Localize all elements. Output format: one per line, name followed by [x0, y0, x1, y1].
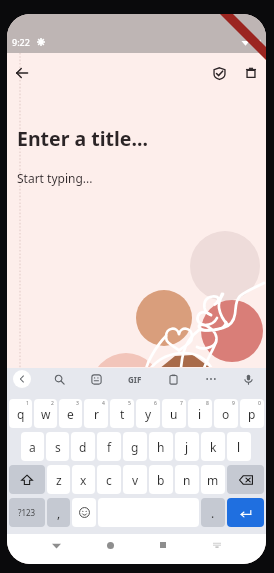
- button[interactable]: w: [34, 399, 57, 428]
- button[interactable]: GIF: [124, 368, 146, 390]
- button[interactable]: Stickers: [86, 369, 106, 389]
- button[interactable]: ?123: [9, 498, 45, 527]
- staticText: m: [207, 472, 219, 488]
- button[interactable]: [227, 498, 264, 527]
- staticText: 9:22: [12, 36, 30, 48]
- staticText: u: [170, 406, 178, 422]
- staticText: y: [145, 406, 152, 422]
- button[interactable]: Back: [45, 534, 67, 556]
- button[interactable]: [72, 498, 96, 527]
- button[interactable]: k: [201, 432, 225, 461]
- staticText: f: [107, 439, 112, 455]
- staticText: p: [248, 406, 256, 422]
- staticText: d: [79, 439, 87, 455]
- staticText: k: [210, 439, 217, 455]
- staticText: 8: [206, 400, 209, 407]
- button[interactable]: c: [97, 465, 121, 494]
- button[interactable]: Hide keyboard: [206, 534, 228, 556]
- button[interactable]: h: [149, 432, 173, 461]
- button[interactable]: y: [136, 399, 160, 428]
- button[interactable]: ,: [47, 498, 70, 527]
- button[interactable]: n: [175, 465, 199, 494]
- staticText: g: [131, 439, 139, 455]
- button[interactable]: Delete: [239, 61, 263, 85]
- staticText: 3: [76, 400, 79, 407]
- staticText: q: [17, 406, 25, 422]
- staticText: 4: [102, 400, 105, 407]
- button[interactable]: More options: [201, 369, 221, 389]
- staticText: ?123: [18, 507, 36, 518]
- button[interactable]: g: [123, 432, 147, 461]
- staticText: .: [211, 505, 215, 521]
- button[interactable]: Search: [49, 369, 69, 389]
- button[interactable]: a: [21, 432, 44, 461]
- staticText: w: [41, 406, 51, 422]
- button[interactable]: z: [47, 465, 70, 494]
- staticText: Enter a title...: [17, 125, 148, 152]
- staticText: GIF: [128, 374, 142, 385]
- staticText: ,: [57, 505, 61, 521]
- staticText: i: [198, 406, 202, 422]
- staticText: n: [183, 472, 191, 488]
- button[interactable]: Home: [99, 534, 121, 556]
- staticText: t: [120, 406, 125, 422]
- button[interactable]: j: [175, 432, 199, 461]
- button[interactable]: f: [97, 432, 121, 461]
- staticText: 7: [180, 400, 183, 407]
- staticText: 2: [51, 400, 54, 407]
- button[interactable]: d: [71, 432, 95, 461]
- staticText: b: [157, 472, 165, 488]
- button[interactable]: q: [9, 399, 32, 428]
- button[interactable]: o: [214, 399, 238, 428]
- staticText: c: [106, 472, 112, 488]
- staticText: 6: [154, 400, 157, 407]
- staticText: a: [29, 439, 36, 455]
- button[interactable]: x: [72, 465, 95, 494]
- button[interactable]: p: [240, 399, 264, 428]
- staticText: o: [222, 406, 230, 422]
- button[interactable]: i: [188, 399, 212, 428]
- staticText: r: [94, 406, 99, 422]
- button[interactable]: .: [201, 498, 225, 527]
- staticText: 5: [128, 400, 131, 407]
- button[interactable]: e: [59, 399, 82, 428]
- staticText: 0: [258, 400, 261, 407]
- button[interactable]: Lock note: [207, 61, 231, 85]
- staticText: 1: [26, 400, 29, 407]
- button[interactable]: u: [162, 399, 186, 428]
- button[interactable]: Back: [10, 61, 34, 85]
- button[interactable]: t: [110, 399, 134, 428]
- staticText: Start typing...: [17, 170, 93, 186]
- staticText: 9: [232, 400, 235, 407]
- button[interactable]: Recent apps: [152, 534, 174, 556]
- button[interactable]: v: [123, 465, 147, 494]
- button[interactable]: b: [149, 465, 173, 494]
- staticText: e: [67, 406, 74, 422]
- staticText: j: [185, 439, 189, 455]
- button[interactable]: m: [201, 465, 225, 494]
- button[interactable]: Clipboard: [163, 369, 183, 389]
- button[interactable]: l: [227, 432, 251, 461]
- button[interactable]: [227, 465, 264, 494]
- staticText: z: [56, 472, 62, 488]
- button[interactable]: s: [46, 432, 69, 461]
- button[interactable]: r: [84, 399, 108, 428]
- staticText: l: [237, 439, 241, 455]
- staticText: x: [80, 472, 87, 488]
- button[interactable]: [9, 465, 45, 494]
- staticText: s: [55, 439, 61, 455]
- button[interactable]: Voice input: [238, 369, 258, 389]
- button[interactable]: Expand toolbar: [13, 370, 31, 388]
- staticText: v: [132, 472, 139, 488]
- staticText: h: [157, 439, 165, 455]
